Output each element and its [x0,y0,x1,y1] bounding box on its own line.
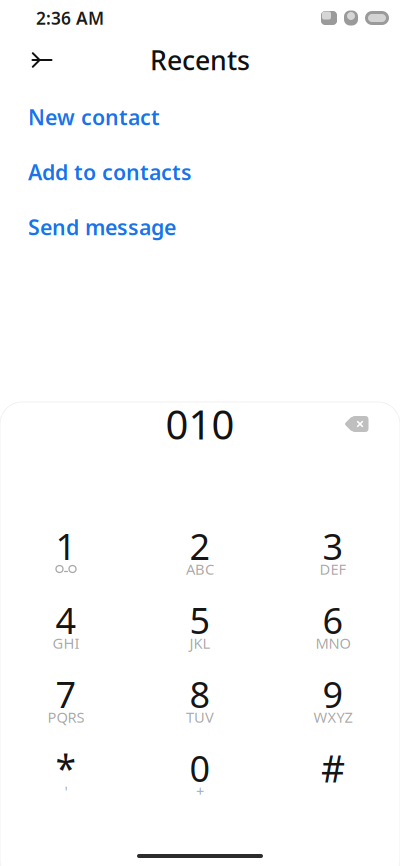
staticText: 6 [322,596,343,644]
staticText: # [321,743,345,793]
staticText: MNO [315,633,350,653]
button[interactable]: Send message [0,205,400,249]
staticText: 4 [55,596,76,644]
button[interactable]: New contact [0,95,400,139]
staticText: ' [64,781,67,801]
button[interactable]: 3 [278,520,388,586]
button[interactable]: 8 [145,668,255,734]
staticText: Send message [28,213,176,241]
button[interactable]: 7 [11,668,121,734]
button[interactable]: 6 [278,594,388,660]
staticText: TUV [186,707,214,727]
staticText: 1 [55,522,76,570]
staticText: New contact [28,103,160,131]
staticText: 0 [189,744,210,792]
button[interactable]: * [11,742,121,808]
staticText: WXYZ [313,707,352,727]
staticText: 2:36 AM [36,6,104,29]
staticText: 7 [55,670,76,718]
staticText: PQRS [47,707,84,727]
button[interactable]: Back [17,36,65,84]
button[interactable]: 1 [11,520,121,586]
button[interactable]: 4 [11,594,121,660]
staticText: Add to contacts [28,158,192,186]
staticText: GHI [52,633,79,653]
button[interactable]: 5 [145,594,255,660]
button[interactable]: Delete [333,402,381,446]
staticText: 9 [322,670,343,718]
button[interactable]: # [278,742,388,808]
staticText: 010 [165,397,234,450]
staticText: 8 [189,670,210,718]
button[interactable]: 2 [145,520,255,586]
staticText: DEF [319,559,346,579]
staticText: Recents [150,42,250,78]
staticText: JKL [189,633,210,653]
staticText: + [196,781,204,801]
staticText: 5 [189,596,210,644]
staticText: 2 [189,522,210,570]
staticText: * [55,743,76,793]
button[interactable]: 9 [278,668,388,734]
staticText: 3 [322,522,343,570]
button[interactable]: 0 [145,742,255,808]
staticText: ABC [186,559,214,579]
button[interactable]: Add to contacts [0,150,400,194]
